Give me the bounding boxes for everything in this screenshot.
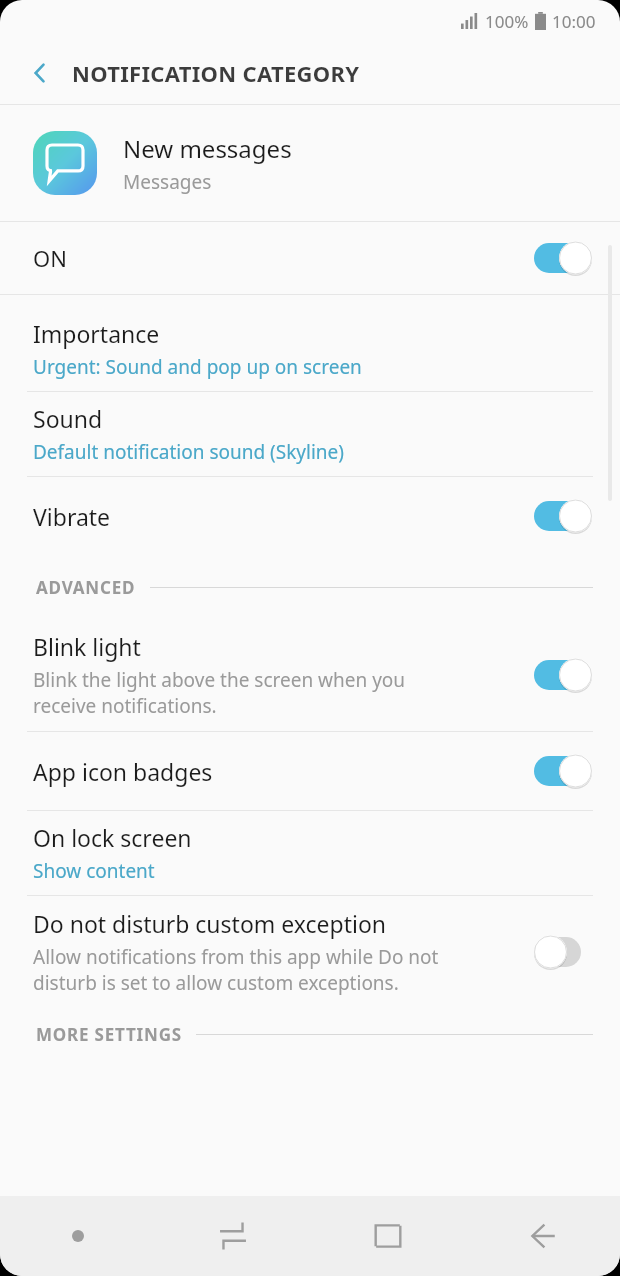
button[interactable]: Importance xyxy=(0,307,620,391)
staticText: New messages xyxy=(123,132,292,165)
staticText: Default notification sound (Skyline) xyxy=(33,439,345,465)
button[interactable]: On lock screen xyxy=(0,811,620,895)
staticText: 10:00 xyxy=(552,10,596,33)
staticText: NOTIFICATION CATEGORY xyxy=(72,58,360,88)
staticText: 100% xyxy=(485,10,529,33)
staticText: Blink light xyxy=(33,631,141,662)
button[interactable]: App icon badges xyxy=(0,732,620,810)
button[interactable]: Do not disturb custom exception xyxy=(0,896,620,1008)
button[interactable]: ON xyxy=(0,222,620,294)
button[interactable]: Sound xyxy=(0,392,620,476)
staticText: Vibrate xyxy=(33,501,111,532)
staticText: Importance xyxy=(33,318,160,349)
button[interactable]: Back xyxy=(16,49,64,97)
staticText: Allow notifications from this app while … xyxy=(33,944,439,996)
staticText: App icon badges xyxy=(33,756,213,787)
staticText: On lock screen xyxy=(33,822,192,853)
staticText: Messages xyxy=(123,169,212,195)
button[interactable]: New messages xyxy=(0,105,620,221)
staticText: Blink the light above the screen when yo… xyxy=(33,667,406,719)
staticText: MORE SETTINGS xyxy=(36,1023,182,1046)
button[interactable]: Blink light xyxy=(0,619,620,731)
staticText: Sound xyxy=(33,403,103,434)
staticText: ON xyxy=(33,243,67,273)
button[interactable]: Vibrate xyxy=(0,477,620,555)
button[interactable]: Menu xyxy=(0,1196,155,1276)
staticText: Do not disturb custom exception xyxy=(33,908,387,939)
staticText: ADVANCED xyxy=(36,576,136,599)
button[interactable]: Home xyxy=(310,1196,465,1276)
button[interactable]: Back xyxy=(465,1196,620,1276)
button[interactable]: Recents xyxy=(155,1196,310,1276)
staticText: Show content xyxy=(33,858,155,884)
staticText: Urgent: Sound and pop up on screen xyxy=(33,354,362,380)
